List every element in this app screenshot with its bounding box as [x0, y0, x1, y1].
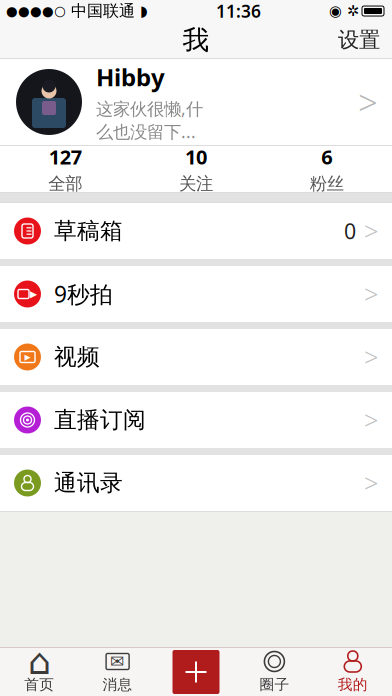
button[interactable]: 草稿箱	[0, 203, 392, 259]
staticText: 0	[344, 217, 356, 245]
button[interactable]: 圈子	[235, 648, 314, 696]
button[interactable]: 10	[131, 146, 261, 192]
button[interactable]: 直播订阅	[0, 392, 392, 448]
staticText: 圈子	[259, 675, 289, 693]
button[interactable]: Hibby	[0, 59, 392, 145]
button[interactable]: 6	[261, 146, 392, 192]
staticText: 关注	[179, 173, 213, 194]
button[interactable]: ✉	[78, 648, 157, 696]
staticText: 通讯录	[54, 469, 123, 497]
staticText: ⌂	[28, 641, 51, 682]
staticText: 全部	[48, 173, 82, 194]
staticText: 视频	[54, 343, 100, 371]
staticText: >	[358, 79, 378, 125]
button[interactable]: ⌂	[0, 648, 78, 696]
staticText: >	[364, 214, 378, 248]
staticText: 9秒拍	[54, 279, 113, 309]
button[interactable]: 设置	[326, 22, 392, 58]
staticText: 11:36	[216, 0, 261, 22]
staticText: 我的	[338, 675, 368, 693]
staticText: 设置	[338, 27, 380, 53]
staticText: ◉ ✲	[329, 3, 359, 19]
staticText: 127	[49, 144, 82, 170]
button[interactable]: 新建	[157, 648, 235, 696]
staticText: ▶	[24, 352, 30, 362]
staticText: ✉	[110, 652, 125, 671]
button[interactable]: 127	[0, 146, 131, 192]
staticText: ▶	[30, 289, 37, 299]
staticText: 10	[185, 144, 207, 170]
staticText: 6	[321, 144, 332, 170]
staticText: >	[364, 403, 378, 437]
staticText: ●●●●○	[6, 3, 66, 18]
staticText: 直播订阅	[54, 406, 146, 434]
button[interactable]: 我的	[314, 648, 392, 696]
staticText: 消息	[103, 675, 133, 693]
staticText: 首页	[24, 675, 54, 693]
staticText: 粉丝	[310, 173, 344, 194]
staticText: >	[364, 466, 378, 500]
staticText: ◗	[140, 3, 148, 19]
staticText: >	[364, 340, 378, 374]
staticText: Hibby	[96, 61, 165, 93]
staticText: 我	[182, 24, 209, 56]
staticText: 草稿箱	[54, 217, 123, 245]
button[interactable]: ▶	[0, 329, 392, 385]
staticText: >	[364, 277, 378, 311]
staticText: 中国联通	[66, 1, 140, 21]
staticText: 这家伙很懒,什么也没留下...	[96, 97, 203, 143]
button[interactable]: ▶	[0, 266, 392, 322]
button[interactable]: 通讯录	[0, 455, 392, 511]
